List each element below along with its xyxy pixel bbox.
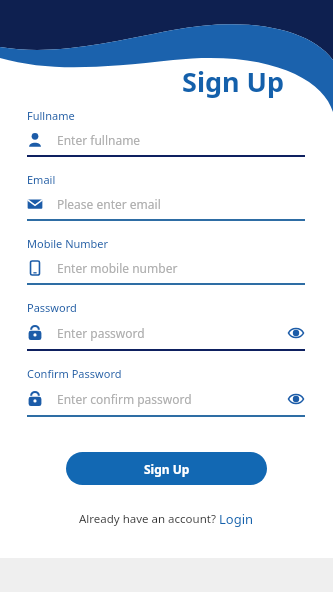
staticText: Enter mobile number: [57, 260, 305, 276]
staticText: Mobile Number: [27, 236, 109, 251]
staticText: Password: [27, 300, 77, 315]
staticText: Sign Up: [182, 63, 285, 100]
button[interactable]: Toggle password visibility: [287, 324, 305, 342]
staticText: Sign Up: [144, 461, 190, 477]
button[interactable]: Toggle password visibility: [287, 390, 305, 408]
staticText: Enter password: [57, 325, 287, 341]
staticText: Login: [219, 510, 254, 528]
button[interactable]: Email: [27, 172, 305, 236]
staticText: Please enter email: [57, 196, 305, 212]
staticText: Email: [27, 172, 56, 187]
button[interactable]: Password: [27, 300, 305, 366]
button[interactable]: Sign Up: [66, 452, 267, 485]
button[interactable]: Login: [219, 510, 254, 528]
staticText: Enter fullname: [57, 132, 305, 148]
staticText: Enter confirm password: [57, 391, 287, 407]
staticText: Fullname: [27, 108, 75, 123]
button[interactable]: Mobile Number: [27, 236, 305, 300]
staticText: Confirm Password: [27, 366, 122, 381]
button[interactable]: Confirm Password: [27, 366, 305, 432]
button[interactable]: Fullname: [27, 108, 305, 172]
staticText: Already have an account?: [79, 511, 219, 527]
